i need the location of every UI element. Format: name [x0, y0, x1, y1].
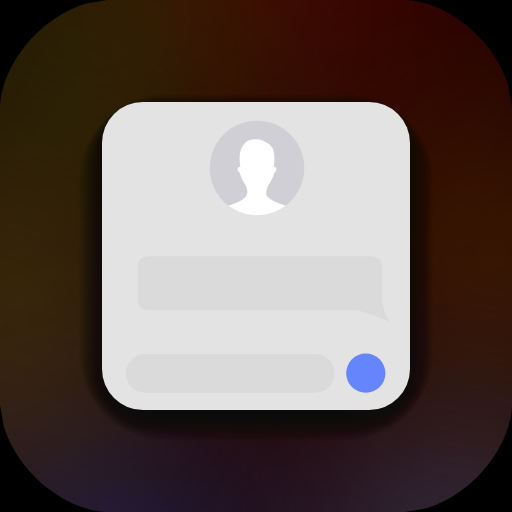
button[interactable]: Messages [0, 0, 512, 512]
